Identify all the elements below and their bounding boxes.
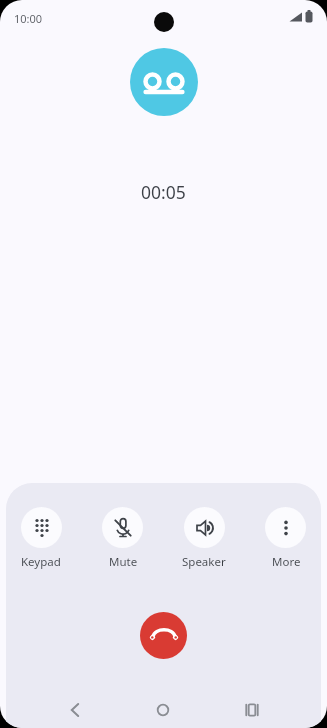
button[interactable] [232,690,272,728]
button[interactable] [102,507,143,548]
button[interactable] [265,507,306,548]
staticText: Mute [109,554,138,570]
staticText: More [272,554,301,570]
button[interactable] [21,507,62,548]
button[interactable] [55,690,95,728]
button[interactable] [143,690,183,728]
staticText: 10:00 [14,11,43,26]
staticText: Keypad [21,554,61,570]
staticText: Speaker [182,554,226,570]
staticText: 00:05 [141,180,186,204]
button[interactable] [140,612,187,659]
button[interactable] [184,507,225,548]
